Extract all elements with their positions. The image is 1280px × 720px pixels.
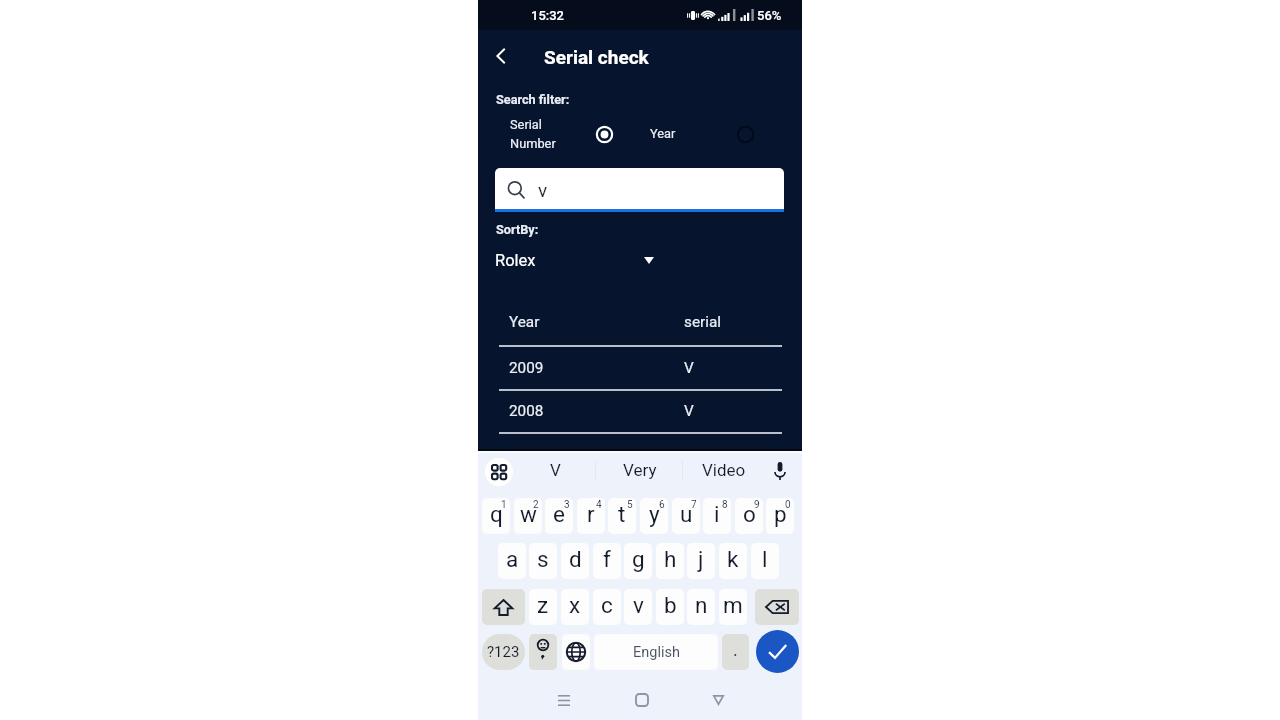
button[interactable]: h bbox=[656, 543, 684, 579]
staticText: 8 bbox=[722, 499, 728, 511]
button[interactable]: q bbox=[482, 498, 510, 534]
staticText: 3 bbox=[564, 499, 570, 511]
staticText: i bbox=[714, 501, 720, 527]
button[interactable]: Backspace bbox=[755, 589, 799, 625]
staticText: English bbox=[633, 644, 680, 661]
staticText: r bbox=[587, 501, 595, 527]
staticText: t bbox=[618, 501, 626, 527]
staticText: h bbox=[664, 546, 677, 572]
button[interactable]: x bbox=[561, 589, 589, 625]
button[interactable]: m bbox=[719, 589, 747, 625]
button[interactable]: i bbox=[703, 498, 731, 534]
button[interactable]: Back bbox=[700, 682, 736, 718]
staticText: k bbox=[727, 546, 739, 572]
button[interactable]: Voice input bbox=[766, 457, 794, 485]
button[interactable]: r bbox=[577, 498, 605, 534]
staticText: b bbox=[664, 592, 677, 618]
staticText: 1 bbox=[501, 499, 507, 511]
button[interactable]: Emoji bbox=[529, 634, 557, 670]
staticText: z bbox=[537, 592, 549, 618]
button[interactable]: j bbox=[687, 543, 715, 579]
button[interactable]: . bbox=[722, 634, 749, 670]
button[interactable]: d bbox=[561, 543, 589, 579]
staticText: o bbox=[743, 501, 756, 527]
button[interactable]: Very bbox=[598, 450, 682, 491]
button[interactable]: Enter bbox=[756, 630, 799, 673]
button[interactable]: s bbox=[529, 543, 557, 579]
button[interactable]: Back bbox=[481, 36, 521, 76]
button[interactable]: Rolex bbox=[495, 247, 665, 274]
button[interactable]: Serial Number bbox=[589, 119, 619, 149]
staticText: Year bbox=[509, 313, 540, 331]
staticText: 2009 bbox=[509, 359, 544, 377]
button[interactable]: e bbox=[545, 498, 573, 534]
button[interactable]: Video bbox=[685, 450, 763, 491]
button[interactable]: 2009 bbox=[499, 347, 782, 391]
staticText: m bbox=[723, 592, 743, 618]
staticText: 6 bbox=[659, 499, 665, 511]
button[interactable]: o bbox=[735, 498, 763, 534]
button[interactable]: Keyboard toolbar bbox=[485, 458, 513, 486]
button[interactable]: z bbox=[529, 589, 557, 625]
button[interactable]: l bbox=[751, 543, 779, 579]
staticText: e bbox=[553, 501, 565, 527]
staticText: 15:32 bbox=[531, 8, 564, 23]
button[interactable]: Search bbox=[495, 168, 784, 209]
staticText: Video bbox=[702, 460, 746, 480]
button[interactable]: Shift bbox=[482, 589, 525, 625]
staticText: j bbox=[698, 546, 704, 572]
staticText: 4 bbox=[596, 499, 602, 511]
button[interactable]: 2008 bbox=[499, 390, 782, 434]
staticText: V bbox=[684, 359, 694, 377]
button[interactable]: f bbox=[593, 543, 621, 579]
button[interactable]: Change language bbox=[562, 634, 590, 670]
staticText: f bbox=[603, 546, 611, 572]
staticText: a bbox=[506, 546, 519, 572]
button[interactable]: u bbox=[672, 498, 700, 534]
button[interactable]: a bbox=[498, 543, 526, 579]
staticText: 56% bbox=[757, 8, 782, 23]
button[interactable]: Home bbox=[624, 682, 660, 718]
button[interactable]: p bbox=[766, 498, 794, 534]
staticText: Serial Number bbox=[510, 117, 556, 151]
button[interactable]: t bbox=[608, 498, 636, 534]
button[interactable]: Year bbox=[730, 119, 760, 149]
button[interactable]: k bbox=[719, 543, 747, 579]
button[interactable]: y bbox=[640, 498, 668, 534]
button[interactable]: b bbox=[656, 589, 684, 625]
staticText: l bbox=[762, 546, 768, 572]
staticText: . bbox=[733, 639, 738, 660]
staticText: x bbox=[569, 592, 581, 618]
button[interactable]: w bbox=[514, 498, 542, 534]
staticText: c bbox=[601, 592, 613, 618]
staticText: u bbox=[680, 501, 693, 527]
button[interactable]: Year bbox=[499, 303, 782, 347]
button[interactable]: English bbox=[594, 634, 718, 670]
button[interactable]: g bbox=[624, 543, 652, 579]
staticText: v bbox=[633, 592, 644, 618]
staticText: Rolex bbox=[495, 251, 536, 270]
staticText: Serial check bbox=[544, 46, 649, 68]
staticText: Very bbox=[623, 460, 657, 480]
button[interactable]: Recents bbox=[546, 682, 582, 718]
button[interactable]: ?123 bbox=[482, 634, 525, 670]
button[interactable]: n bbox=[687, 589, 715, 625]
staticText: d bbox=[569, 546, 582, 572]
button[interactable]: v bbox=[624, 589, 652, 625]
staticText: n bbox=[695, 592, 708, 618]
staticText: 2008 bbox=[509, 402, 544, 420]
button[interactable]: c bbox=[593, 589, 621, 625]
staticText: SortBy: bbox=[496, 222, 539, 237]
staticText: v bbox=[538, 179, 548, 201]
button[interactable]: V bbox=[516, 450, 594, 491]
staticText: 2 bbox=[533, 499, 539, 511]
staticText: p bbox=[774, 501, 787, 527]
staticText: 0 bbox=[785, 499, 791, 511]
staticText: serial bbox=[684, 313, 721, 331]
staticText: V bbox=[684, 402, 694, 420]
staticText: ?123 bbox=[487, 643, 520, 661]
staticText: q bbox=[490, 501, 503, 527]
staticText: Year bbox=[650, 126, 676, 141]
staticText: Search filter: bbox=[496, 92, 570, 107]
staticText: y bbox=[649, 501, 660, 527]
